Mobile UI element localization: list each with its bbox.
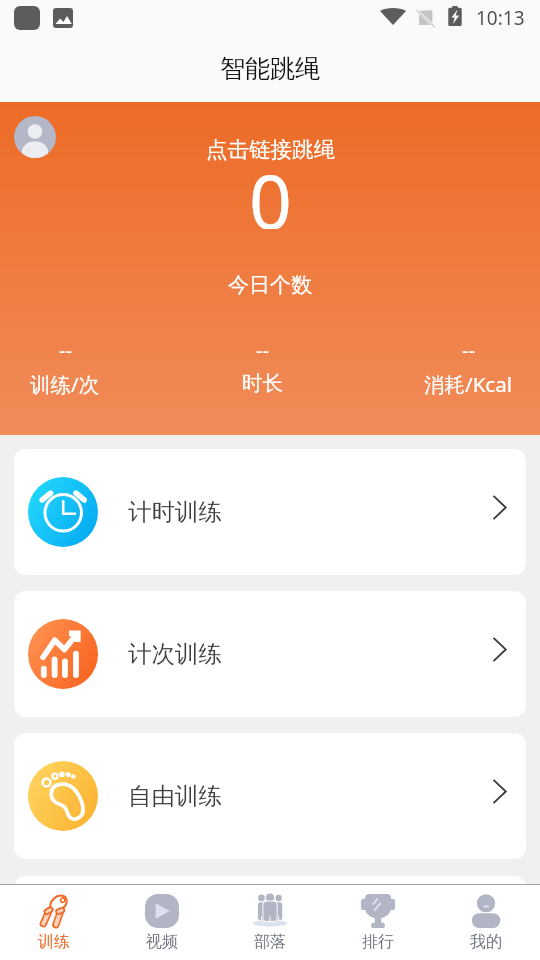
staticText: 10:13 [476, 5, 525, 29]
staticText: 计时训练 [128, 497, 222, 527]
staticText: 部落 [254, 932, 286, 952]
staticText: 训练/次 [30, 370, 100, 398]
button[interactable]: Profile [14, 116, 56, 158]
staticText: -- [256, 337, 269, 364]
button[interactable]: 我的 [432, 885, 540, 960]
button[interactable]: 排行 [324, 885, 432, 960]
button[interactable]: 点击链接跳绳 [206, 136, 335, 163]
staticText: 训练 [38, 932, 70, 952]
staticText: 自由训练 [128, 781, 222, 811]
staticText: 视频 [146, 932, 178, 952]
staticText: 智能跳绳 [220, 53, 320, 84]
staticText: 排行 [362, 932, 394, 952]
button[interactable]: 计次训练 [14, 591, 526, 717]
button[interactable]: 自由训练 [14, 733, 526, 859]
button[interactable] [14, 876, 526, 960]
staticText: -- [59, 337, 72, 364]
staticText: 消耗/Kcal [424, 370, 512, 398]
button[interactable]: 视频 [108, 885, 216, 960]
staticText: 今日个数 [228, 272, 312, 298]
staticText: 0 [249, 149, 292, 229]
button[interactable]: 部落 [216, 885, 324, 960]
button[interactable]: 计时训练 [14, 449, 526, 575]
staticText: 时长 [242, 370, 283, 396]
staticText: -- [462, 337, 475, 364]
staticText: 计次训练 [128, 639, 222, 669]
staticText: 我的 [470, 932, 502, 952]
button[interactable]: 训练 [0, 885, 108, 960]
